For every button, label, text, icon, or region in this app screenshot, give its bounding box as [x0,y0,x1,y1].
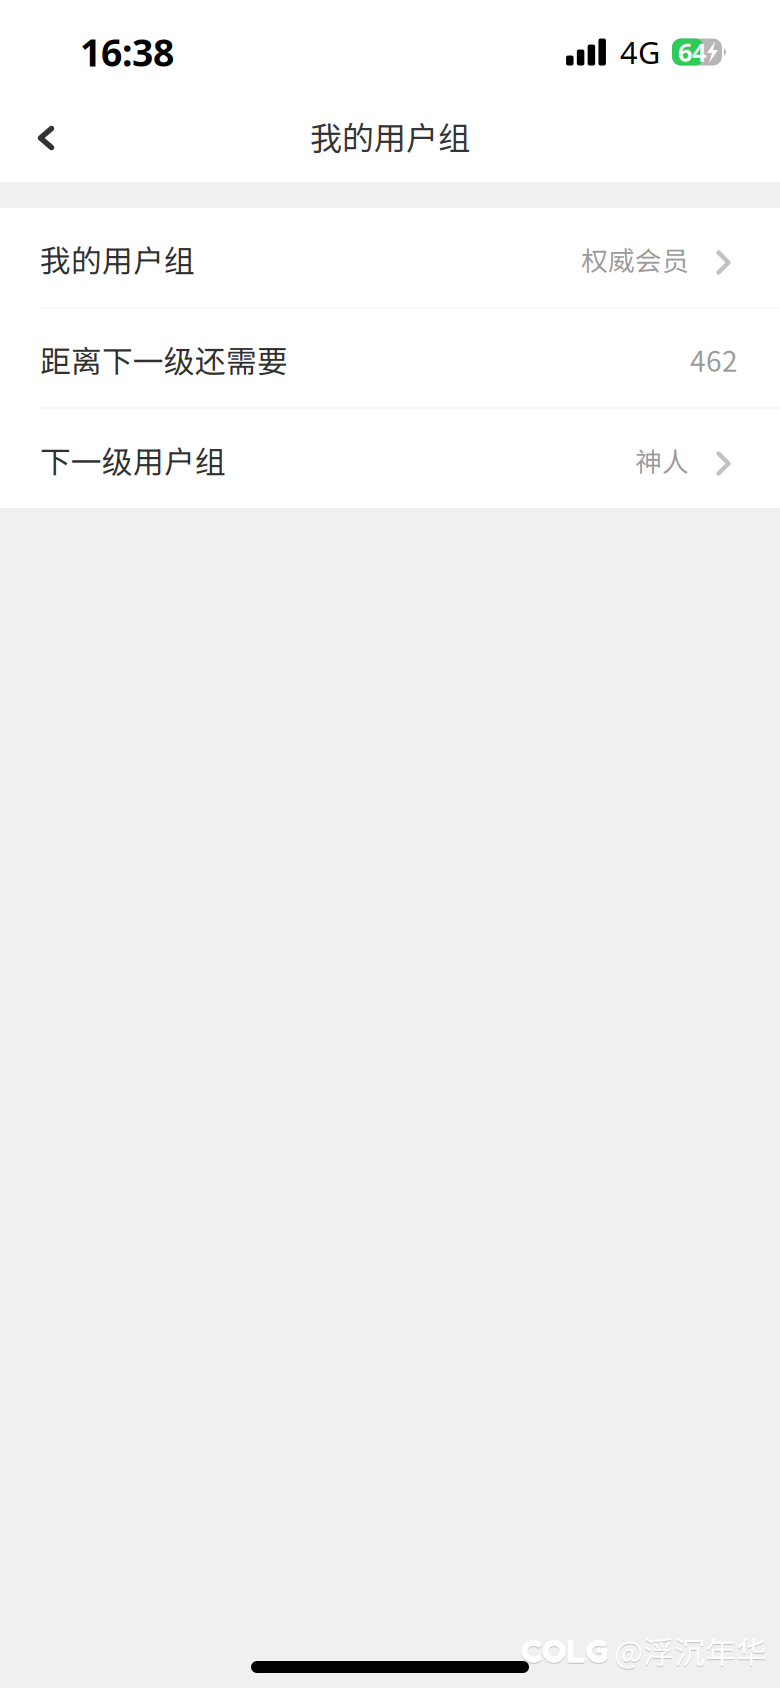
staticText: COLG [521,1632,609,1672]
staticText: COLG [521,1630,609,1671]
button[interactable]: 距离下一级还需要 [0,308,780,407]
staticText: 神人 [635,441,689,479]
staticText: @浮沉年华 [614,1628,767,1673]
staticText: 16:38 [80,27,174,77]
staticText: 距离下一级还需要 [40,337,288,382]
staticText: 下一级用户组 [40,438,226,482]
staticText: 4G [620,32,660,72]
button[interactable]: 下一级用户组 [0,409,780,508]
staticText: @浮沉年华 [614,1629,767,1674]
staticText: 我的用户组 [40,237,195,281]
staticText: 64 [678,35,706,69]
staticText: 我的用户组 [310,113,470,159]
button[interactable]: 我的用户组 [0,208,780,307]
staticText: 462 [690,339,738,380]
staticText: 权威会员 [581,240,689,278]
button[interactable]: Back [18,106,74,170]
